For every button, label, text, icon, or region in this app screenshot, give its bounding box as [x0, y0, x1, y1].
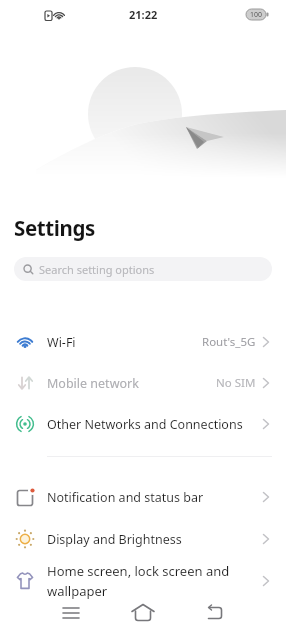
button[interactable]: Search setting options: [14, 257, 272, 281]
staticText: Wi-Fi: [47, 334, 76, 351]
staticText: 100: [250, 10, 263, 20]
staticText: Rout's_5G: [202, 334, 256, 350]
staticText: Settings: [14, 214, 95, 242]
staticText: Display and Brightness: [47, 531, 182, 548]
staticText: Search setting options: [39, 262, 155, 277]
staticText: Notification and status bar: [47, 489, 204, 506]
staticText: No SIM: [216, 375, 256, 391]
staticText: Other Networks and Connections: [47, 416, 243, 433]
button[interactable]: Mobile network: [0, 362, 286, 404]
staticText: 21:22: [129, 7, 158, 22]
button[interactable]: Wi-Fi: [0, 321, 286, 363]
button[interactable]: Home screen, lock screen and: [0, 558, 286, 604]
button[interactable]: [195, 598, 235, 628]
staticText: Home screen, lock screen and: [47, 562, 230, 580]
button[interactable]: Notification and status bar: [0, 476, 286, 518]
button[interactable]: [123, 598, 163, 628]
button[interactable]: [51, 598, 91, 628]
button[interactable]: Other Networks and Connections: [0, 403, 286, 445]
staticText: wallpaper: [47, 582, 108, 600]
staticText: Mobile network: [47, 375, 139, 392]
button[interactable]: Display and Brightness: [0, 518, 286, 560]
